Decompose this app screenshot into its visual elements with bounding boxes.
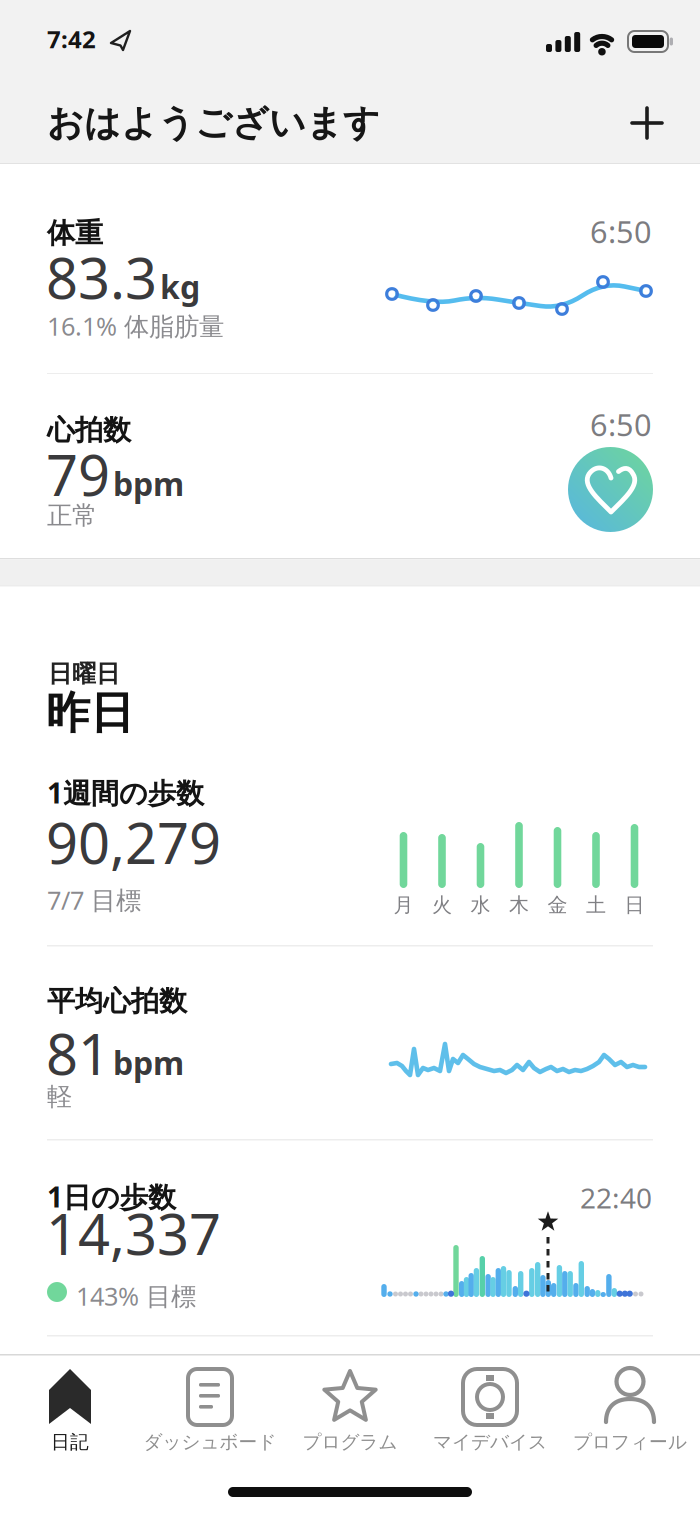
staticText: おはようございます — [47, 101, 380, 145]
staticText: 軽 — [47, 1081, 72, 1112]
staticText: 火 — [432, 893, 452, 917]
staticText: 16.1% 体脂肪量 — [47, 309, 224, 343]
staticText: 正常 — [47, 500, 97, 531]
staticText: 金 — [547, 893, 567, 917]
staticText: bpm — [113, 462, 184, 505]
staticText: 心拍数 — [47, 413, 131, 447]
staticText: 体重 — [47, 216, 103, 250]
staticText: 木 — [509, 893, 529, 917]
staticText: 14,337 — [46, 1196, 221, 1270]
staticText: 7:42 — [47, 23, 96, 55]
button[interactable]: Add — [625, 101, 669, 145]
button[interactable]: プロフィール — [560, 1356, 700, 1466]
staticText: 79 — [46, 437, 110, 511]
staticText: 平均心拍数 — [47, 984, 187, 1018]
staticText: 143% 目標 — [76, 1279, 196, 1313]
staticText: bpm — [113, 1041, 184, 1084]
staticText: ダッシュボード — [143, 1430, 276, 1453]
staticText: 1日の歩数 — [47, 1178, 176, 1215]
staticText: 水 — [470, 893, 490, 917]
staticText: kg — [160, 265, 200, 308]
staticText: 日 — [624, 893, 644, 917]
staticText: マイデバイス — [433, 1430, 547, 1453]
staticText: 83.3 — [46, 240, 157, 314]
button[interactable]: 体重 — [0, 164, 700, 373]
button[interactable]: 1日の歩数 — [0, 1140, 700, 1335]
button[interactable]: 日記 — [0, 1356, 140, 1466]
staticText: 1週間の歩数 — [47, 774, 204, 811]
staticText: 昨日 — [46, 686, 134, 740]
staticText: 90,279 — [46, 805, 221, 879]
staticText: 月 — [393, 893, 413, 917]
button[interactable]: プログラム — [280, 1356, 420, 1466]
staticText: 6:50 — [590, 404, 652, 445]
button[interactable]: ダッシュボード — [140, 1356, 280, 1466]
button[interactable]: 平均心拍数 — [0, 946, 700, 1140]
staticText: 7/7 目標 — [47, 883, 141, 917]
button[interactable]: マイデバイス — [420, 1356, 560, 1466]
staticText: 22:40 — [580, 1179, 652, 1216]
staticText: 日曜日 — [48, 659, 120, 688]
staticText: プロフィール — [573, 1430, 687, 1453]
staticText: 6:50 — [590, 211, 652, 252]
staticText: プログラム — [302, 1430, 397, 1453]
button[interactable]: 1週間の歩数 — [0, 755, 700, 946]
staticText: 81 — [46, 1016, 110, 1090]
button[interactable]: 心拍数 — [0, 374, 700, 558]
staticText: 日記 — [51, 1430, 89, 1453]
staticText: 土 — [586, 893, 606, 917]
